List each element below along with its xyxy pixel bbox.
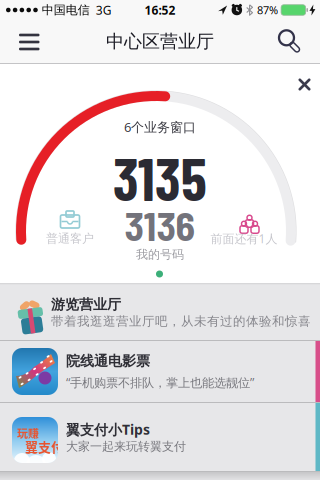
- staticText: 3135: [113, 142, 207, 213]
- staticText: 前面还有1人: [210, 230, 277, 247]
- staticText: 普通客户: [46, 231, 94, 246]
- button[interactable]: 玩赚: [0, 403, 320, 471]
- button[interactable]: 菜单: [0, 27, 39, 57]
- staticText: “手机购票不排队，掌上也能选靓位”: [66, 374, 254, 391]
- staticText: 6个业务窗口: [124, 118, 196, 136]
- staticText: 87%: [257, 2, 278, 17]
- staticText: 3G: [96, 2, 112, 18]
- staticText: 翼支付小Tips: [66, 420, 150, 439]
- staticText: 中国电信: [42, 2, 90, 17]
- staticText: 我的号码: [136, 247, 184, 262]
- staticText: 带着我逛逛营业厅吧，从未有过的体验和惊喜: [51, 313, 311, 329]
- staticText: 玩赚: [17, 425, 39, 441]
- staticText: 游览营业厅: [51, 296, 121, 313]
- button[interactable]: 搜索: [279, 29, 320, 55]
- staticText: 16:52: [144, 2, 175, 18]
- button[interactable]: 院线通电影票: [0, 341, 320, 402]
- staticText: 翼支付: [25, 437, 64, 456]
- button[interactable]: 游览营业厅: [0, 285, 320, 340]
- staticText: 中心区营业厅: [106, 30, 214, 53]
- staticText: 大家一起来玩转翼支付: [66, 439, 186, 454]
- button[interactable]: 关闭: [291, 71, 318, 98]
- staticText: 院线通电影票: [66, 352, 150, 370]
- staticText: 3136: [124, 201, 195, 249]
